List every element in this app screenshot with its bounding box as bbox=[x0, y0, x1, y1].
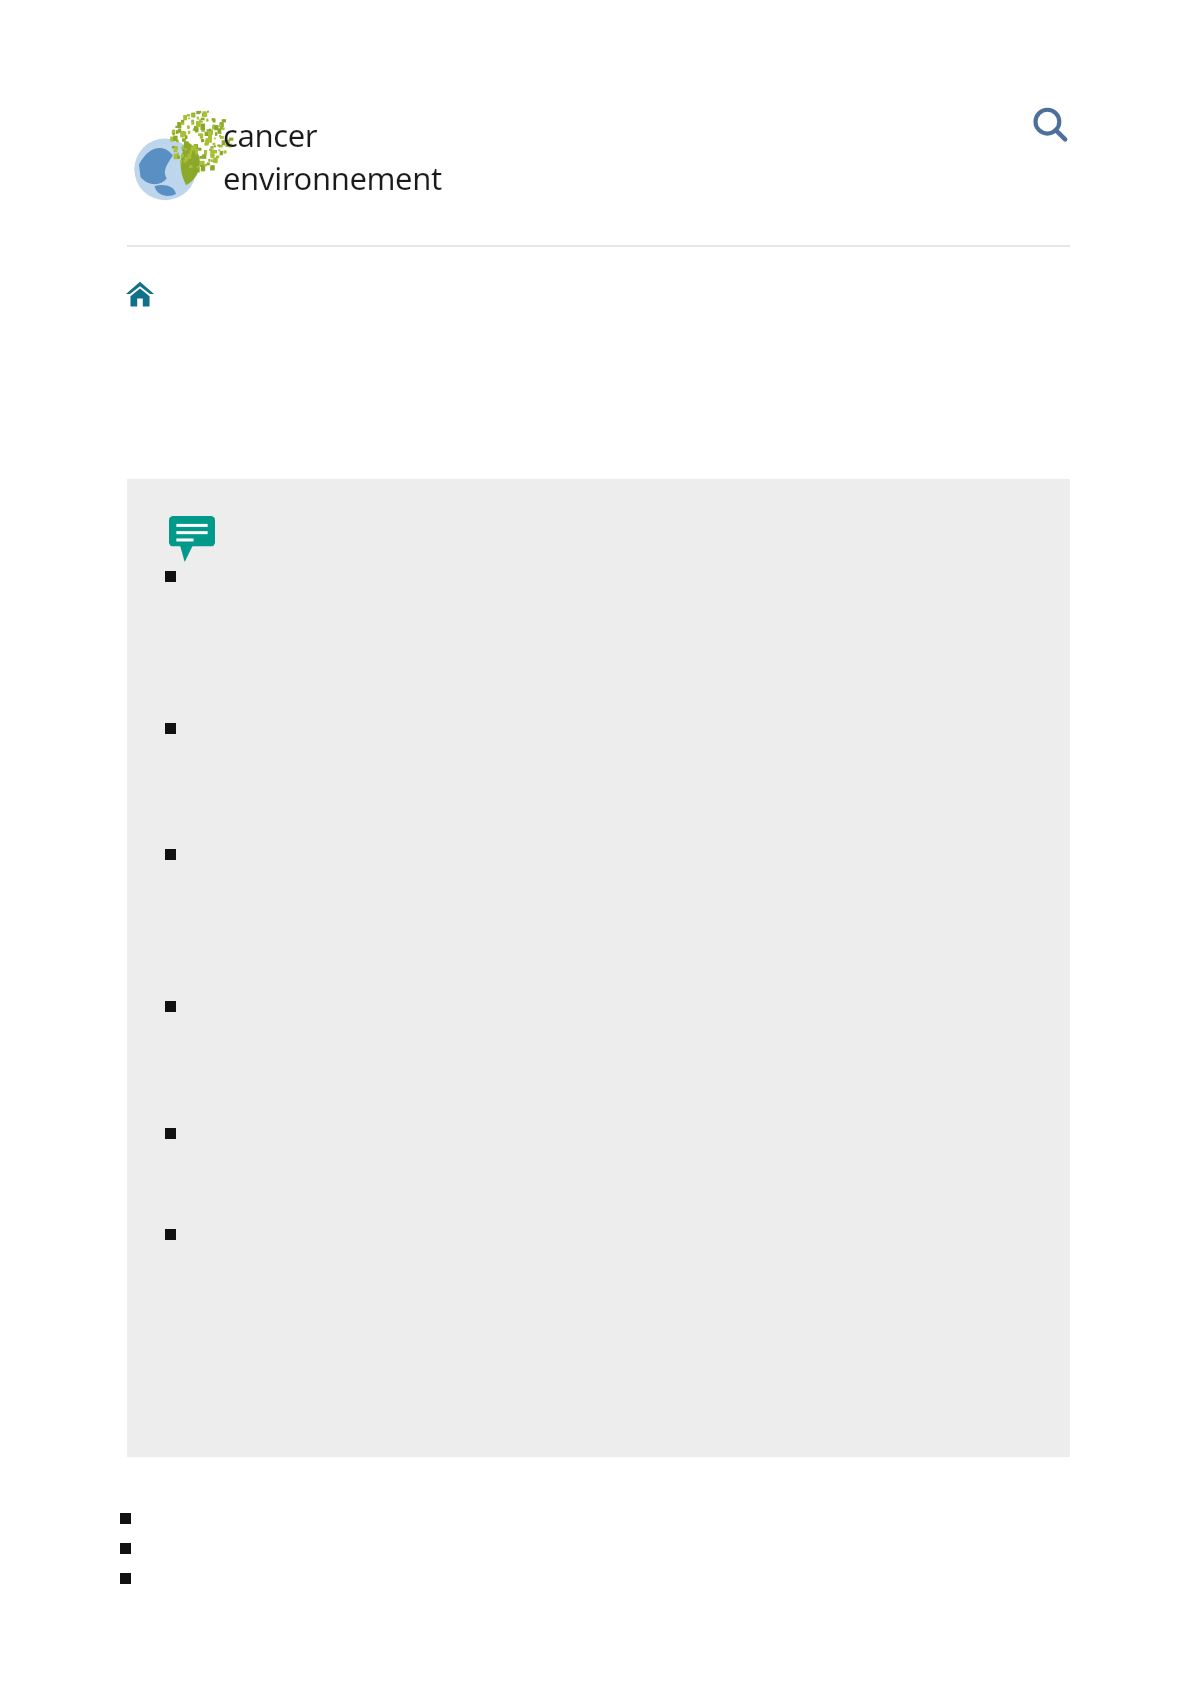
staticText: environnement bbox=[223, 157, 442, 199]
button[interactable]: Cancer environnement accueil bbox=[131, 112, 441, 202]
button[interactable]: Rechercher bbox=[1020, 95, 1082, 157]
staticText: cancer bbox=[223, 114, 318, 156]
button[interactable]: Commentaires bbox=[169, 516, 215, 562]
button[interactable]: Accueil bbox=[118, 272, 162, 316]
